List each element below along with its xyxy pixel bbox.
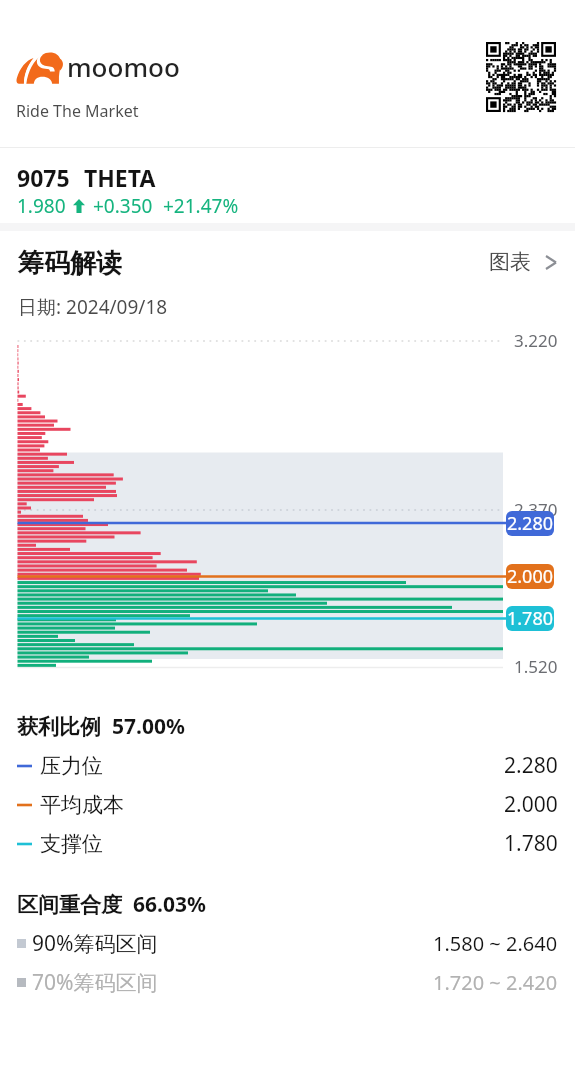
staticText: 2.280 bbox=[507, 511, 554, 536]
staticText: 压力位 bbox=[40, 753, 103, 779]
staticText: 1.780 bbox=[504, 829, 558, 858]
staticText: 支撑位 bbox=[40, 831, 103, 857]
staticText: 筹码解读 bbox=[18, 247, 122, 280]
staticText: 66.03% bbox=[133, 890, 206, 919]
staticText: 1.580 ~ 2.640 bbox=[433, 930, 558, 957]
button[interactable]: 支撑位 bbox=[17, 824, 558, 863]
button[interactable]: 1.780 bbox=[506, 606, 554, 631]
staticText: Ride The Market bbox=[16, 100, 139, 122]
staticText: 3.220 bbox=[514, 329, 558, 352]
staticText: 平均成本 bbox=[40, 792, 124, 818]
staticText: 90%筹码区间 bbox=[32, 929, 158, 958]
staticText: 图表 bbox=[489, 249, 531, 275]
staticText: moomoo bbox=[67, 49, 180, 84]
staticText: +21.47% bbox=[163, 193, 239, 219]
staticText: 2.280 bbox=[504, 751, 558, 780]
staticText: +0.350 bbox=[93, 193, 153, 219]
staticText: 2.000 bbox=[504, 790, 558, 819]
button[interactable]: 2.000 bbox=[506, 564, 554, 589]
staticText: 2.000 bbox=[507, 564, 554, 589]
staticText: 70%筹码区间 bbox=[32, 968, 158, 997]
button[interactable]: 图表 bbox=[489, 249, 557, 275]
staticText: 1.980 bbox=[17, 193, 66, 219]
staticText: 1.720 ~ 2.420 bbox=[433, 969, 558, 996]
button[interactable]: 平均成本 bbox=[17, 785, 558, 824]
other: QR code bbox=[486, 42, 556, 112]
button[interactable]: 70%筹码区间 bbox=[17, 963, 558, 1002]
staticText: 57.00% bbox=[112, 712, 185, 741]
staticText: 区间重合度 bbox=[17, 892, 122, 918]
staticText: 1.520 bbox=[514, 655, 558, 678]
staticText: 9075 bbox=[17, 162, 70, 193]
other: moomoo logo bbox=[15, 51, 62, 84]
staticText: 获利比例 bbox=[17, 714, 101, 740]
button[interactable]: 压力位 bbox=[17, 746, 558, 785]
staticText: 1.780 bbox=[507, 606, 554, 631]
staticText: 2.370 bbox=[514, 498, 558, 521]
staticText: 日期: 2024/09/18 bbox=[18, 294, 168, 320]
button[interactable]: 90%筹码区间 bbox=[17, 924, 558, 963]
staticText: THETA bbox=[84, 162, 156, 193]
button[interactable]: 2.280 bbox=[506, 511, 554, 536]
